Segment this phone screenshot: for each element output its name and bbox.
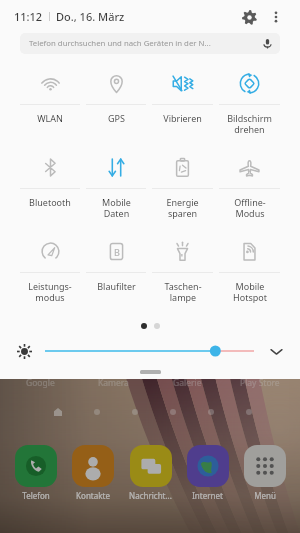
staticText: Kontakte: [76, 490, 110, 501]
staticText: Offline- Modus: [234, 196, 266, 220]
button[interactable]: Energie sparen: [149, 146, 216, 220]
staticText: WLAN: [37, 112, 63, 124]
button[interactable]: Vibrieren: [149, 62, 216, 124]
staticText: Vibrieren: [163, 112, 202, 124]
staticText: Leistungs- modus: [28, 280, 72, 304]
staticText: Internet: [192, 490, 223, 501]
staticText: Bluetooth: [29, 196, 71, 208]
staticText: GPS: [108, 112, 125, 124]
button[interactable]: Offline- Modus: [216, 146, 283, 220]
button[interactable]: Nachricht...: [123, 445, 178, 501]
staticText: Galerie: [173, 377, 202, 389]
staticText: Bildschirm drehen: [227, 112, 272, 136]
staticText: Mobile Hotspot: [233, 280, 267, 304]
button[interactable]: Settings: [236, 4, 262, 30]
staticText: Blaufilter: [97, 280, 136, 292]
button[interactable]: More options: [265, 6, 287, 28]
button[interactable]: Expand: [268, 343, 284, 359]
button[interactable]: Telefon: [8, 445, 63, 501]
staticText: Kamera: [98, 377, 129, 389]
button[interactable]: Leistungs- modus: [17, 230, 83, 304]
staticText: Play Store: [240, 377, 280, 389]
staticText: Energie sparen: [166, 196, 199, 220]
staticText: Menü: [254, 490, 276, 501]
button[interactable]: Telefon durchsuchen und nach Geräten in …: [20, 33, 280, 54]
button[interactable]: Bluetooth: [17, 146, 83, 208]
staticText: Telefon: [22, 490, 50, 501]
button[interactable]: Taschen- lampe: [149, 230, 216, 304]
staticText: B: [114, 246, 120, 258]
button[interactable]: Mobile Daten: [83, 146, 149, 220]
button[interactable]: WLAN: [17, 62, 83, 124]
button[interactable]: Kontakte: [65, 445, 120, 501]
button[interactable]: Internet: [180, 445, 235, 501]
button[interactable]: B: [83, 230, 149, 292]
staticText: Telefon durchsuchen und nach Geräten in …: [29, 38, 211, 49]
staticText: Do., 16. März: [56, 9, 125, 24]
staticText: Google: [26, 377, 55, 389]
button[interactable]: Menü: [237, 445, 292, 501]
button[interactable]: GPS: [83, 62, 149, 124]
staticText: 11:12: [14, 9, 43, 24]
staticText: Nachricht...: [129, 490, 172, 501]
staticText: Mobile Daten: [102, 196, 131, 220]
button[interactable]: Bildschirm drehen: [216, 62, 283, 136]
staticText: Taschen- lampe: [164, 280, 202, 304]
button[interactable]: Mobile Hotspot: [216, 230, 283, 304]
